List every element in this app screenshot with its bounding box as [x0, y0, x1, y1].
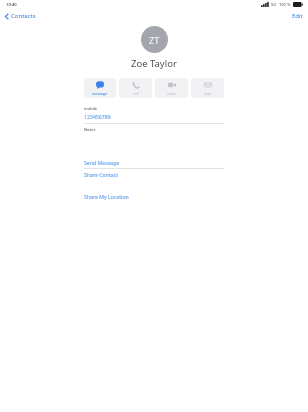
button[interactable]: Contacts [0, 10, 42, 22]
button[interactable]: Contact photo [141, 26, 168, 53]
button[interactable]: mail [191, 78, 224, 98]
staticText: Share Contact [84, 171, 119, 178]
staticText: 10:40 [6, 2, 17, 8]
staticText: ZT [149, 34, 160, 46]
button[interactable]: mobile [84, 105, 224, 123]
staticText: Edit [292, 12, 303, 20]
button[interactable]: Notes [84, 124, 224, 146]
staticText: 100 % [279, 2, 291, 7]
button[interactable]: Share My Location [84, 191, 224, 202]
staticText: mobile [84, 106, 98, 111]
staticText: Send Message [84, 159, 120, 166]
staticText: Notes [84, 127, 96, 132]
staticText: message [92, 91, 108, 96]
button[interactable]: Share Contact [84, 169, 224, 180]
button[interactable]: message [84, 78, 116, 98]
button[interactable]: Send Message [84, 157, 224, 168]
button[interactable]: video [155, 78, 188, 98]
staticText: Share My Location [84, 193, 129, 200]
staticText: Zoe Taylor [131, 57, 177, 70]
staticText: video [167, 91, 177, 96]
staticText: 123456789 [84, 113, 111, 120]
staticText: mail [204, 91, 212, 96]
staticText: call [133, 91, 139, 96]
button[interactable]: call [119, 78, 152, 98]
button[interactable]: Edit [286, 10, 308, 22]
staticText: Contacts [11, 12, 36, 20]
staticText: 5G [271, 2, 277, 7]
